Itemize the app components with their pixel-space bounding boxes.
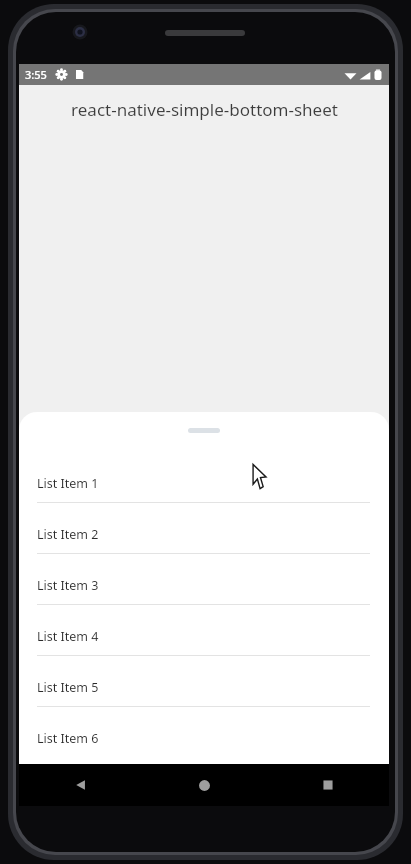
staticText: List Item 2 (37, 526, 99, 543)
staticText: react-native-simple-bottom-sheet (71, 98, 338, 121)
button[interactable]: List Item 6 (19, 720, 389, 757)
button[interactable]: Back (19, 764, 143, 806)
button[interactable]: Recent apps (266, 764, 389, 806)
staticText: List Item 5 (37, 679, 99, 696)
staticText: List Item 1 (37, 475, 99, 492)
staticText: List Item 4 (37, 628, 99, 645)
staticText: List Item 6 (37, 730, 99, 747)
staticText: 3:55 (25, 67, 47, 82)
button[interactable] (19, 412, 389, 452)
button[interactable]: List Item 3 (19, 567, 389, 618)
button[interactable]: List Item 4 (19, 618, 389, 669)
button[interactable]: List Item 1 (19, 464, 389, 516)
button[interactable]: List Item 5 (19, 669, 389, 720)
button[interactable]: List Item 2 (19, 516, 389, 567)
button[interactable]: Home (143, 764, 266, 806)
staticText: List Item 3 (37, 577, 99, 594)
